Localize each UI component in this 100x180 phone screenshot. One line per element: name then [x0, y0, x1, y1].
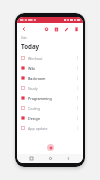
button[interactable]: More options	[74, 75, 80, 81]
button[interactable]: Delete	[72, 25, 80, 33]
button[interactable]: Home	[47, 155, 54, 162]
button[interactable]: Wiki	[21, 63, 80, 73]
button[interactable]: More options	[74, 125, 80, 131]
staticText: Date	[21, 36, 27, 40]
staticText: Study	[28, 86, 74, 91]
button[interactable]: Notifications	[42, 25, 50, 33]
button[interactable]: More options	[74, 105, 80, 111]
button[interactable]: More options	[74, 115, 80, 121]
staticText: Wiki	[28, 66, 74, 71]
button[interactable]: Design	[21, 113, 80, 123]
staticText: Workout	[28, 56, 74, 61]
staticText: Design	[28, 116, 74, 121]
button[interactable]: Study	[21, 83, 80, 93]
button[interactable]: Programming	[21, 93, 80, 103]
button[interactable]: More options	[74, 55, 80, 61]
button[interactable]: Add task	[47, 144, 54, 151]
button[interactable]: Recents	[28, 155, 35, 162]
button[interactable]: More options	[74, 65, 80, 71]
button[interactable]: Backroom	[21, 73, 80, 83]
staticText: Programming	[28, 96, 74, 101]
button[interactable]: More options	[74, 85, 80, 91]
button[interactable]: App update	[21, 123, 80, 133]
button[interactable]: Workout	[21, 53, 80, 63]
button[interactable]: Edit	[62, 25, 70, 33]
staticText: Today	[21, 42, 40, 50]
button[interactable]: More options	[74, 95, 80, 101]
button[interactable]: Coding	[21, 103, 80, 113]
staticText: Backroom	[28, 76, 74, 81]
button[interactable]: Archive	[52, 25, 60, 33]
button[interactable]: Back	[65, 155, 72, 162]
staticText: Coding	[28, 106, 74, 111]
staticText: App update	[28, 126, 74, 131]
button[interactable]: Back	[20, 25, 28, 33]
